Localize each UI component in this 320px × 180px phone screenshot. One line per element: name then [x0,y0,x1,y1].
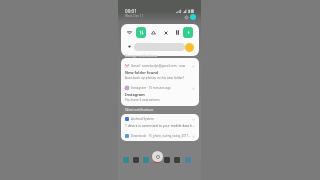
button[interactable]: Profile [190,14,196,20]
staticText: Gmail · somebodys@gmail.com · now [131,64,192,68]
staticText: Downloads · 15_photo_outing_today_2017… [131,134,192,138]
button[interactable]: App [174,157,180,163]
staticText: Auto-back up photos in this new folder? [125,76,185,80]
button[interactable]: App [185,157,191,163]
button[interactable]: App [133,157,139,163]
button[interactable]: Clear all notifications [152,151,163,162]
button[interactable]: Android System [125,117,195,127]
button[interactable]: Downloads · 15_photo_outing_today_2017… [125,134,195,138]
staticText: Wed, Dec 11 [125,14,144,18]
button[interactable]: Wi-Fi [124,27,134,38]
button[interactable]: Auto brightness [185,43,194,52]
staticText: You have 3 new actions [125,98,160,102]
button[interactable]: Pause [172,27,182,38]
button[interactable]: App [164,157,170,163]
staticText: Manage notifications [125,54,158,58]
button[interactable]: Mobile data [136,27,146,38]
staticText: Instagram [125,92,145,97]
staticText: Instagram · 15 minutes ago [131,86,192,90]
button[interactable]: Do not disturb [148,27,158,38]
button[interactable]: Flashlight [183,27,193,38]
staticText: New folder found [125,70,159,75]
button[interactable]: Bluetooth off [161,27,171,38]
button[interactable]: Settings [183,14,190,21]
staticText: 09:01 [125,8,137,14]
button[interactable]: App [154,157,160,163]
button[interactable]: Gmail · somebodys@gmail.com · now [125,64,195,80]
button[interactable]: Brightness [134,43,185,51]
button[interactable]: Instagram · 15 minutes ago [125,86,195,102]
button[interactable]: App [123,157,129,163]
staticText: Silent notifications [125,108,154,112]
staticText: Android System [131,117,192,121]
button[interactable]: App [143,157,149,163]
staticText: 1 device is connected to your mobile dat… [125,123,195,127]
